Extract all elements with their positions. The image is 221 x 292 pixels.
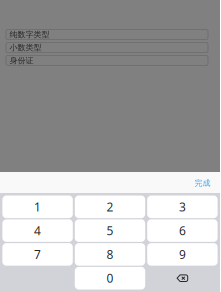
button[interactable]: 7 xyxy=(2,243,73,266)
button[interactable]: 完成 xyxy=(182,172,220,193)
button[interactable]: 2 xyxy=(75,195,145,218)
button[interactable]: 9 xyxy=(147,243,218,266)
staticText: 0 xyxy=(106,270,113,286)
staticText: 8 xyxy=(106,246,113,262)
staticText: 纯数字类型 xyxy=(9,30,49,39)
button[interactable]: Delete xyxy=(147,267,218,289)
button[interactable]: 6 xyxy=(147,219,218,242)
staticText: 身份证 xyxy=(9,56,33,65)
button[interactable]: 纯数字类型 xyxy=(6,29,208,39)
button[interactable]: 1 xyxy=(2,195,73,218)
button[interactable]: 3 xyxy=(147,195,218,218)
button[interactable]: 4 xyxy=(2,219,73,242)
staticText: 9 xyxy=(179,246,186,262)
staticText: 完成 xyxy=(194,178,210,188)
staticText: 小数类型 xyxy=(9,43,41,52)
staticText: 4 xyxy=(34,223,41,238)
button[interactable]: 8 xyxy=(75,243,145,266)
button[interactable]: 小数类型 xyxy=(6,42,208,52)
button[interactable]: 0 xyxy=(75,267,145,289)
staticText: 3 xyxy=(179,199,186,215)
staticText: 1 xyxy=(34,199,41,215)
staticText: 6 xyxy=(179,223,186,238)
staticText: 2 xyxy=(106,199,113,215)
button[interactable]: 5 xyxy=(75,219,145,242)
staticText: 7 xyxy=(34,246,41,262)
staticText: 5 xyxy=(106,223,113,238)
button[interactable]: 身份证 xyxy=(6,55,208,65)
